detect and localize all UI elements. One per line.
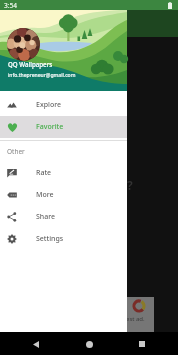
staticText: info.thepreneur@gmail.com: [8, 72, 76, 79]
button[interactable]: Home: [79, 334, 99, 354]
button[interactable]: Share: [0, 206, 127, 228]
staticText: Favorite: [36, 122, 64, 132]
staticText: More: [36, 190, 54, 200]
staticText: 3:54: [4, 1, 17, 10]
button[interactable]: Rate: [0, 162, 127, 184]
button[interactable]: More: [0, 184, 127, 206]
staticText: Settings: [36, 234, 64, 244]
staticText: Share: [36, 212, 56, 222]
staticText: QQ Wallpapers: [8, 60, 53, 68]
button[interactable]: Recent apps: [132, 334, 152, 354]
button[interactable]: Favorite: [0, 116, 127, 138]
button[interactable]: Settings: [0, 228, 127, 250]
button[interactable]: Explore: [0, 94, 127, 116]
staticText: est ad.: [126, 315, 145, 323]
staticText: Rate: [36, 168, 52, 178]
staticText: Other: [7, 147, 25, 156]
button[interactable]: Back: [26, 334, 46, 354]
staticText: ?: [127, 177, 133, 193]
staticText: Explore: [36, 100, 62, 110]
